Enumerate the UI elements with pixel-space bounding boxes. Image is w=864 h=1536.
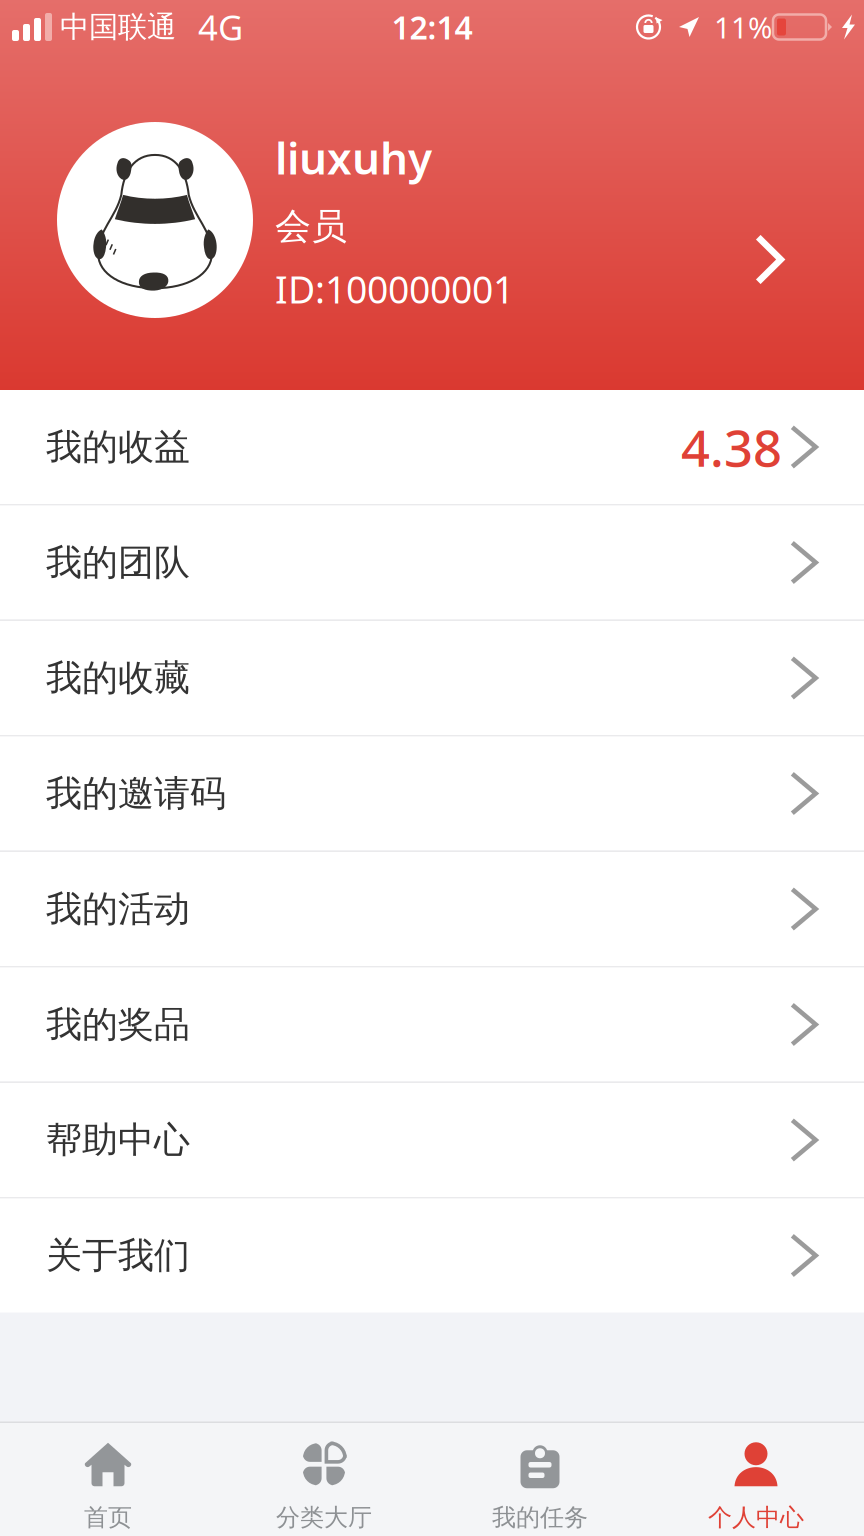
staticText: 12:14 [391,6,472,48]
button[interactable]: 分类大厅 [216,1423,432,1536]
button[interactable]: 关于我们 [0,1198,864,1312]
staticText: 我的活动 [46,887,190,931]
staticText: 我的邀请码 [46,771,226,816]
button[interactable]: 个人中心 [648,1423,864,1536]
staticText: 中国联通 [60,9,176,45]
button[interactable]: 我的任务 [432,1423,648,1536]
staticText: 关于我们 [46,1233,190,1278]
staticText: 首页 [84,1503,132,1532]
staticText: liuxuhy [275,128,432,187]
staticText: 11% [714,7,772,46]
staticText: 我的任务 [492,1503,588,1532]
staticText: 我的收藏 [46,656,190,700]
staticText: 我的收益 [46,425,190,469]
button[interactable]: 首页 [0,1423,216,1536]
staticText: 个人中心 [708,1503,804,1532]
staticText: 分类大厅 [276,1503,372,1532]
staticText: 4.38 [681,413,782,481]
button[interactable]: 我的邀请码 [0,736,864,850]
button[interactable]: 我的收藏 [0,621,864,735]
staticText: ID:100000001 [275,264,514,314]
staticText: 帮助中心 [46,1118,190,1162]
button[interactable]: 我的收益 [0,390,864,504]
staticText: 4G [198,4,243,50]
staticText: 我的团队 [46,540,190,585]
staticText: 会员 [275,204,347,249]
button[interactable]: liuxuhy [0,122,864,318]
staticText: 我的奖品 [46,1002,190,1047]
button[interactable]: 我的奖品 [0,967,864,1081]
button[interactable]: 我的活动 [0,852,864,966]
button[interactable]: 我的团队 [0,505,864,619]
button[interactable]: 帮助中心 [0,1083,864,1197]
